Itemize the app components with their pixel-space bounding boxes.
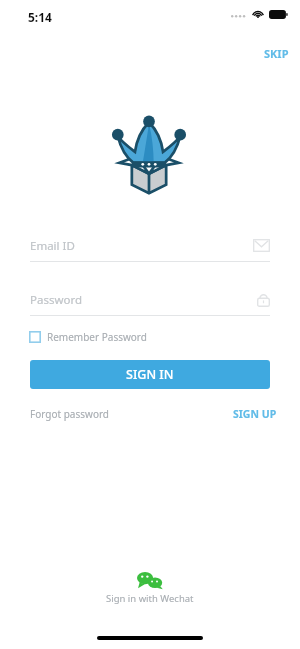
button[interactable]: Email ID <box>30 230 270 261</box>
button[interactable]: Remember Password <box>27 328 149 346</box>
staticText: 5:14 <box>28 9 52 25</box>
button[interactable]: Password <box>30 284 270 315</box>
button[interactable]: SIGN UP <box>231 405 279 423</box>
button[interactable]: SKIP <box>258 42 295 65</box>
staticText: Remember Password <box>47 330 147 344</box>
staticText: Password <box>30 292 83 308</box>
staticText: SIGN UP <box>233 407 277 421</box>
staticText: Forgot password <box>30 407 110 421</box>
button[interactable]: Forgot password <box>28 405 112 423</box>
staticText: Email ID <box>30 238 75 254</box>
staticText: SIGN IN <box>126 366 174 383</box>
other: Sign in with Wechat <box>137 572 163 589</box>
button[interactable]: SIGN IN <box>30 360 270 389</box>
button[interactable]: Sign in with Wechat <box>0 572 300 605</box>
staticText: Sign in with Wechat <box>106 592 194 605</box>
staticText: SKIP <box>264 46 289 61</box>
